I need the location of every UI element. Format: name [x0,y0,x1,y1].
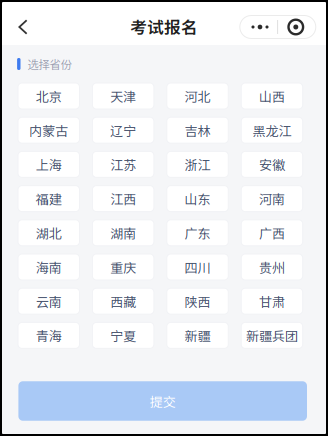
button[interactable]: 山东 [167,186,228,212]
staticText: 青海 [36,326,62,345]
staticText: 广东 [185,223,211,242]
staticText: 黑龙江 [252,121,291,140]
button[interactable]: 云南 [18,288,79,314]
staticText: 海南 [36,257,62,276]
button[interactable]: 重庆 [92,254,154,280]
button[interactable]: Back [4,7,42,47]
staticText: 天津 [110,86,136,105]
staticText: 福建 [36,189,62,208]
staticText: 选择省份 [27,56,71,72]
staticText: 吉林 [185,121,211,140]
button[interactable]: 吉林 [167,117,228,143]
button[interactable]: Close mini program [278,15,314,38]
button[interactable]: More [241,15,279,38]
button[interactable]: 山西 [241,83,303,109]
staticText: 北京 [36,86,62,105]
staticText: 西藏 [110,292,136,311]
button[interactable]: 上海 [18,151,79,177]
staticText: 新疆 [185,326,211,345]
staticText: 江西 [110,189,136,208]
button[interactable]: 贵州 [241,254,303,280]
button[interactable]: 广西 [241,220,303,246]
staticText: 江苏 [110,155,136,174]
button[interactable]: 黑龙江 [241,117,303,143]
staticText: 重庆 [110,257,136,276]
button[interactable]: 陕西 [167,288,228,314]
button[interactable]: 新疆 [167,322,228,348]
staticText: 考试报名 [130,14,198,39]
staticText: 提交 [150,391,176,410]
staticText: 广西 [259,223,285,242]
staticText: 浙江 [185,155,211,174]
button[interactable]: 辽宁 [92,117,154,143]
button[interactable]: 提交 [18,381,307,421]
button[interactable]: 甘肃 [241,288,303,314]
staticText: 内蒙古 [29,121,68,140]
button[interactable]: 湖北 [18,220,79,246]
staticText: 辽宁 [110,121,136,140]
button[interactable]: 内蒙古 [18,117,79,143]
button[interactable]: 浙江 [167,151,228,177]
button[interactable]: 新疆兵团 [241,322,303,348]
staticText: 甘肃 [259,292,285,311]
button[interactable]: 江西 [92,186,154,212]
staticText: 湖南 [110,223,136,242]
button[interactable]: 青海 [18,322,79,348]
staticText: 安徽 [259,155,285,174]
staticText: 云南 [36,292,62,311]
staticText: 山西 [259,86,285,105]
button[interactable]: 河南 [241,186,303,212]
button[interactable]: 河北 [167,83,228,109]
button[interactable]: 宁夏 [92,322,154,348]
staticText: 新疆兵团 [246,326,298,345]
button[interactable]: 四川 [167,254,228,280]
button[interactable]: 广东 [167,220,228,246]
staticText: 四川 [185,257,211,276]
staticText: 宁夏 [110,326,136,345]
button[interactable]: 西藏 [92,288,154,314]
staticText: 陕西 [185,292,211,311]
staticText: 湖北 [36,223,62,242]
staticText: 贵州 [259,257,285,276]
staticText: 上海 [36,155,62,174]
button[interactable]: 福建 [18,186,79,212]
staticText: 河南 [259,189,285,208]
button[interactable]: 安徽 [241,151,303,177]
staticText: 山东 [185,189,211,208]
staticText: 河北 [185,86,211,105]
button[interactable]: 海南 [18,254,79,280]
button[interactable]: 北京 [18,83,79,109]
button[interactable]: 湖南 [92,220,154,246]
button[interactable]: 天津 [92,83,154,109]
button[interactable]: 江苏 [92,151,154,177]
